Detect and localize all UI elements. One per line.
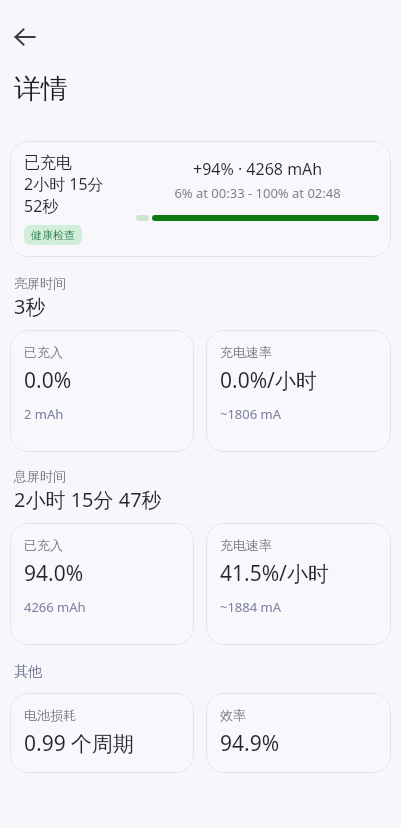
- button[interactable]: Back: [5, 17, 45, 57]
- staticText: ~1806 mA: [220, 405, 282, 423]
- staticText: 电池损耗: [24, 707, 76, 723]
- button[interactable]: 已充电: [10, 141, 391, 257]
- button[interactable]: 已充入: [10, 523, 194, 645]
- button[interactable]: 已充入: [10, 330, 194, 452]
- staticText: 4266 mAh: [24, 598, 86, 616]
- staticText: 其他: [14, 663, 42, 681]
- staticText: 详情: [14, 72, 68, 106]
- button[interactable]: 效率: [206, 693, 391, 773]
- staticText: 6% at 00:33 - 100% at 02:48: [136, 184, 379, 202]
- staticText: 94.9%: [220, 729, 280, 758]
- staticText: 0.0%: [24, 366, 72, 395]
- staticText: 94.0%: [24, 559, 84, 588]
- staticText: 效率: [220, 707, 246, 723]
- staticText: 已充电: [24, 153, 72, 173]
- staticText: 0.0%/小时: [220, 366, 317, 395]
- staticText: 52秒: [24, 195, 59, 217]
- staticText: 亮屏时间: [14, 275, 66, 291]
- button[interactable]: 充电速率: [206, 330, 391, 452]
- staticText: +94% · 4268 mAh: [193, 158, 323, 180]
- staticText: 2小时 15分 47秒: [14, 486, 162, 513]
- staticText: 0.99 个周期: [24, 729, 135, 758]
- staticText: 息屏时间: [14, 468, 66, 484]
- staticText: 41.5%/小时: [220, 559, 329, 588]
- staticText: ~1884 mA: [220, 598, 282, 616]
- staticText: 充电速率: [220, 344, 272, 360]
- staticText: 3秒: [14, 293, 46, 320]
- button[interactable]: 健康检查: [24, 225, 82, 245]
- staticText: 2小时 15分: [24, 173, 104, 195]
- button[interactable]: 电池损耗: [10, 693, 194, 773]
- staticText: 充电速率: [220, 537, 272, 553]
- staticText: 2 mAh: [24, 405, 64, 423]
- staticText: 健康检查: [31, 228, 75, 242]
- staticText: 已充入: [24, 344, 63, 360]
- staticText: 已充入: [24, 537, 63, 553]
- button[interactable]: 充电速率: [206, 523, 391, 645]
